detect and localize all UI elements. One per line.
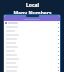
button[interactable]: More [4, 33, 60, 37]
button[interactable] [4, 15, 60, 21]
other: Contact [5, 22, 7, 24]
button[interactable]: More [4, 25, 60, 29]
button[interactable]: More [4, 53, 60, 57]
button[interactable]: More [4, 57, 60, 61]
button[interactable]: More [4, 69, 60, 72]
button[interactable]: More [4, 29, 60, 33]
button[interactable]: More [4, 49, 60, 53]
button[interactable]: More [4, 65, 60, 69]
staticText: Many Numbers [13, 10, 52, 17]
button[interactable]: Contact [4, 21, 60, 25]
staticText: Local [26, 2, 39, 9]
button[interactable]: More [4, 61, 60, 65]
button[interactable]: More [4, 41, 60, 45]
button[interactable]: More [4, 37, 60, 41]
button[interactable]: More [4, 45, 60, 49]
